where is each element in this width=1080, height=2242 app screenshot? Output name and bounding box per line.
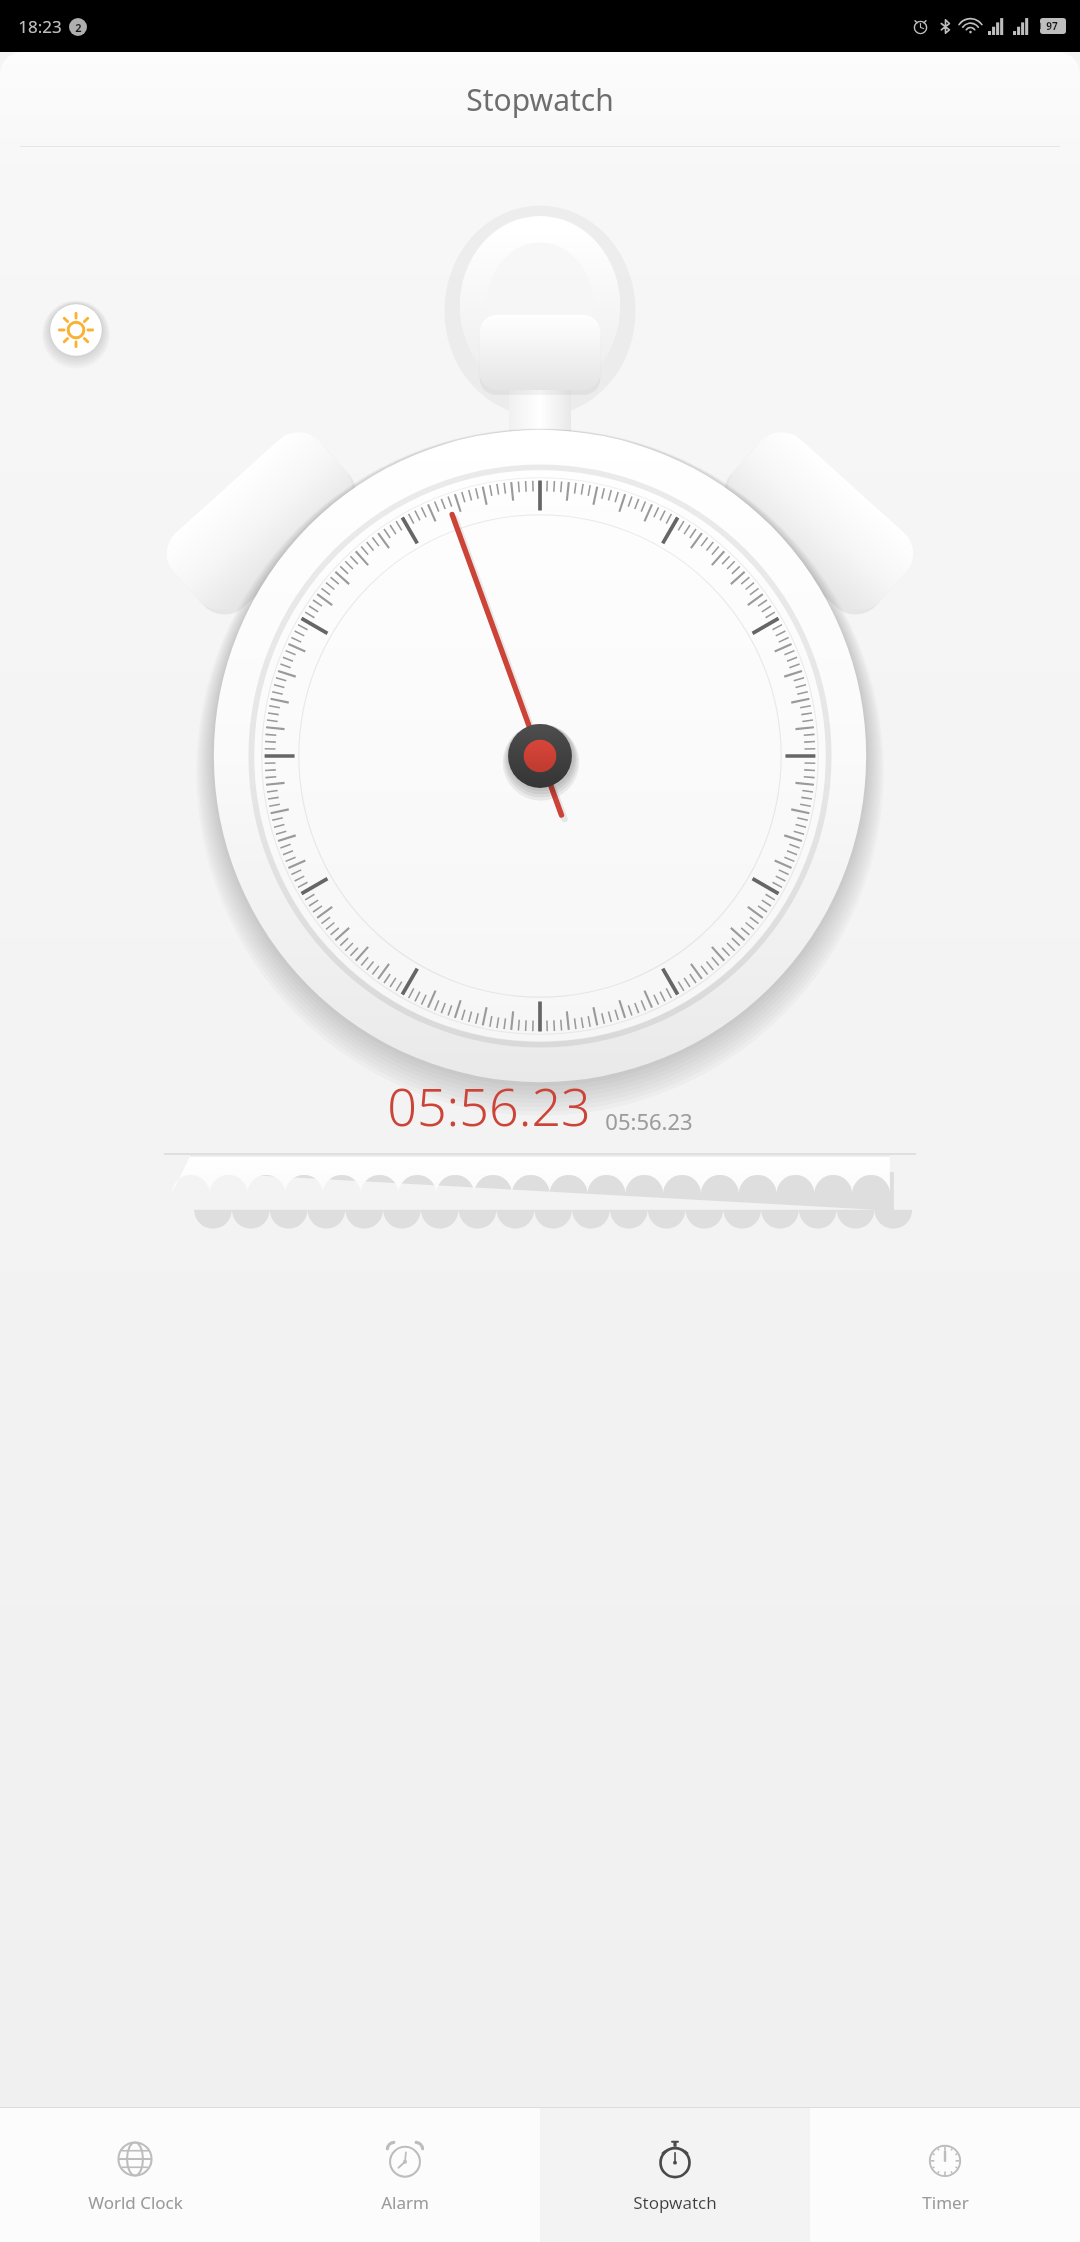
staticText: Timer: [922, 2191, 969, 2214]
staticText: 97: [1046, 19, 1058, 33]
staticText: Stopwatch: [466, 79, 614, 120]
button[interactable]: World Clock: [0, 2108, 270, 2242]
staticText: Alarm: [381, 2191, 429, 2214]
staticText: Stopwatch: [633, 2191, 717, 2214]
button[interactable]: Timer: [810, 2108, 1080, 2242]
staticText: World Clock: [88, 2191, 183, 2214]
button[interactable]: Brightness: [48, 302, 104, 358]
staticText: 18:23: [18, 15, 62, 38]
staticText: 05:56.23: [605, 1106, 693, 1136]
staticText: 05:56.23: [387, 1070, 591, 1141]
staticText: 2: [75, 20, 82, 35]
button[interactable]: Stopwatch: [540, 2108, 810, 2242]
button[interactable]: Alarm: [270, 2108, 540, 2242]
